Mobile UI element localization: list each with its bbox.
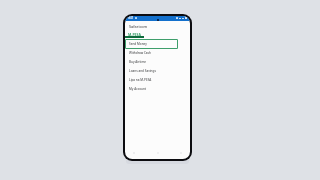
staticText: Send Money (129, 42, 147, 46)
button[interactable]: My Account (125, 84, 179, 93)
staticText: Withdraw Cash (129, 51, 151, 55)
staticText: My Account (129, 87, 147, 91)
staticText: Safaricom (129, 24, 148, 29)
staticText: Buy Airtime (129, 60, 147, 64)
button[interactable]: Send Money (125, 39, 179, 48)
staticText: Lipa na M-PESA (129, 78, 152, 82)
button[interactable]: Loans and Savings (125, 66, 179, 75)
button[interactable]: Withdraw Cash (125, 48, 179, 57)
button[interactable]: Buy Airtime (125, 57, 179, 66)
staticText: 9:41 (128, 16, 134, 20)
staticText: M-PESA (128, 32, 141, 37)
button[interactable]: Lipa na M-PESA (125, 75, 179, 84)
staticText: Loans and Savings (129, 69, 156, 73)
